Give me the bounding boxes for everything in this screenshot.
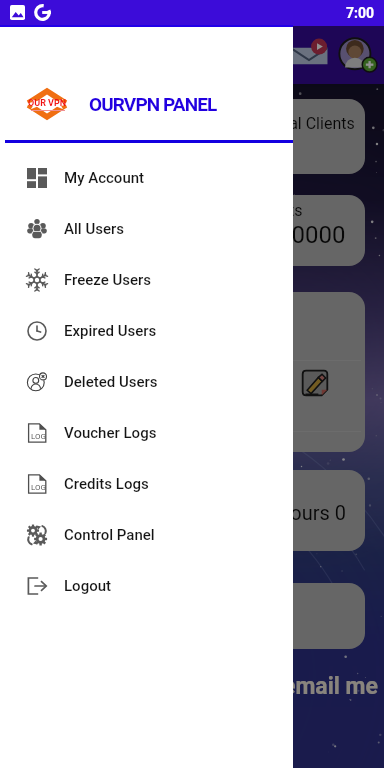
button[interactable]: My Account	[0, 152, 293, 203]
staticText: Expired Users	[64, 322, 157, 340]
staticText: Freeze Users	[64, 271, 152, 289]
button[interactable]: Messages	[288, 34, 330, 76]
staticText: Hours 0	[276, 501, 365, 524]
staticText: My Account	[64, 169, 145, 187]
staticText: OUR VPN	[28, 98, 67, 109]
staticText: OURVPN PANEL	[89, 93, 217, 115]
staticText: email me	[283, 673, 384, 700]
staticText: All Users	[64, 220, 124, 238]
button[interactable]	[16, 292, 365, 452]
staticText: 7:00	[346, 5, 375, 21]
staticText: LOG	[31, 432, 47, 441]
staticText: Credits	[252, 201, 365, 220]
button[interactable]: Add user	[336, 34, 378, 76]
staticText: Logout	[64, 577, 112, 595]
button[interactable]: Control Panel	[0, 509, 293, 560]
button[interactable]: Deleted Users	[0, 356, 293, 407]
button[interactable]: LOG	[0, 458, 293, 509]
button[interactable]: Expired Users	[0, 305, 293, 356]
button[interactable]: LOG	[0, 407, 293, 458]
button[interactable]: Hours 0	[16, 470, 365, 551]
button[interactable]: Total Clients	[16, 99, 365, 174]
staticText: LOG	[31, 483, 47, 492]
button[interactable]: Credits	[16, 195, 365, 266]
button[interactable]: Freeze Users	[0, 254, 293, 305]
staticText: Control Panel	[64, 526, 155, 544]
staticText: Deleted Users	[64, 373, 158, 391]
staticText: Total Clients	[266, 114, 365, 133]
staticText: Credits Logs	[64, 475, 149, 493]
button[interactable]	[16, 583, 365, 649]
staticText: Voucher Logs	[64, 424, 157, 442]
staticText: 10000	[278, 221, 365, 249]
button[interactable]: Logout	[0, 560, 293, 611]
button[interactable]: All Users	[0, 203, 293, 254]
